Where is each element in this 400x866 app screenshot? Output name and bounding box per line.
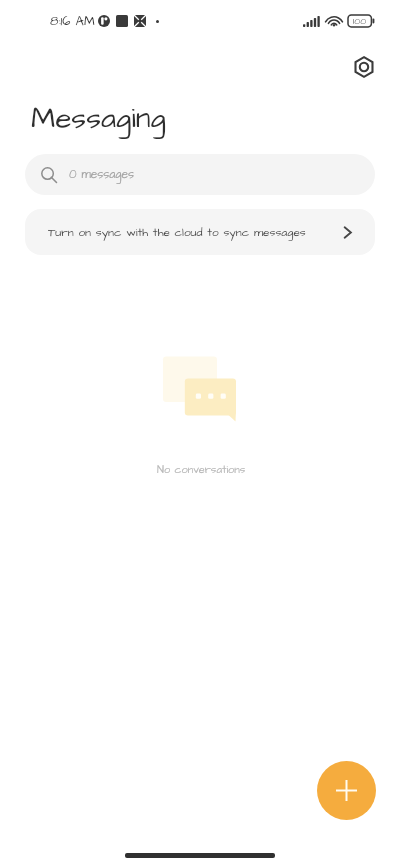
button[interactable]: New conversation [317,761,376,820]
staticText: 0 messages [69,166,135,183]
staticText: 8:16 AM [50,12,95,30]
staticText: 100 [353,15,367,27]
button[interactable]: Turn on sync with the cloud to sync mess… [25,209,375,255]
button[interactable]: Settings [347,50,380,83]
staticText: Messaging [31,98,166,139]
staticText: No conversations [157,462,246,477]
button[interactable]: 0 messages [25,154,375,195]
staticText: Turn on sync with the cloud to sync mess… [48,224,306,240]
